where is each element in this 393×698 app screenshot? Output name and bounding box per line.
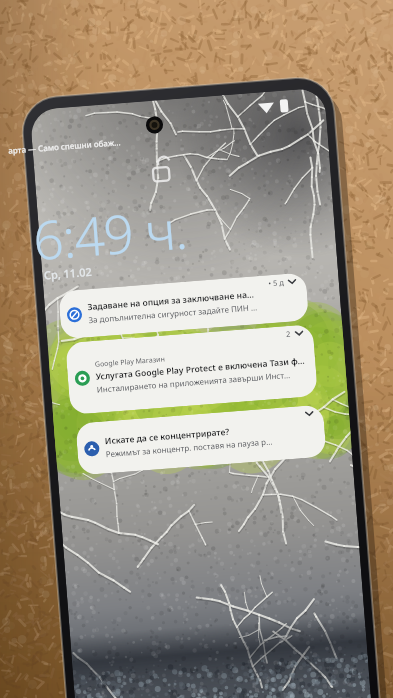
staticText: Google Play Магазин	[94, 354, 166, 370]
staticText: арта — Само спешни обаж…	[8, 136, 121, 156]
staticText: За допълнителна сигурност задайте ПИН …	[88, 301, 258, 325]
button[interactable]: Focus mode notification	[75, 404, 327, 475]
staticText: Услугата Google Play Protect е включена …	[95, 355, 306, 383]
staticText: Ср, 11.02	[43, 264, 92, 282]
staticText: 2	[286, 329, 291, 339]
staticText: Искате да се концентрирате?	[104, 426, 230, 447]
staticText: Задаване на опция за заключване на…	[87, 288, 254, 313]
button[interactable]: Google Play Store notification	[65, 324, 318, 415]
staticText: • 5 д	[268, 277, 284, 288]
staticText: 6:49 ч.	[30, 191, 189, 275]
staticText: Режимът за концентр. поставя на пауза р…	[105, 435, 273, 459]
button[interactable]: Set screen lock notification	[58, 272, 309, 339]
staticText: Инсталирането на приложенията завърши Ин…	[96, 369, 291, 395]
